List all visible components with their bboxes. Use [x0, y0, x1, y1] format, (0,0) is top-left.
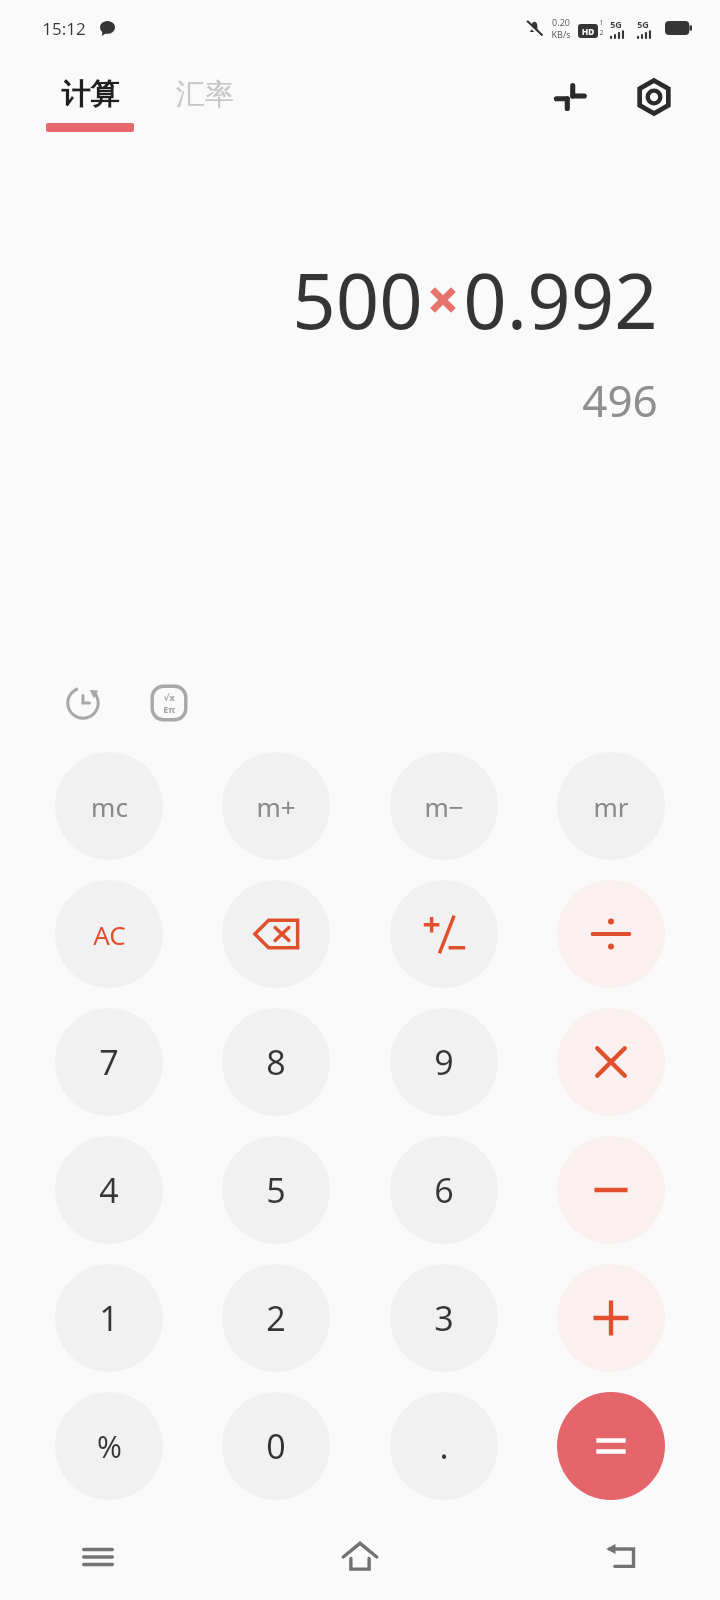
button[interactable]: 3	[390, 1264, 498, 1372]
button[interactable]: 6	[390, 1136, 498, 1244]
button[interactable]: 5	[222, 1136, 330, 1244]
staticText: 1	[99, 1295, 119, 1341]
staticText: 计算	[61, 76, 119, 113]
button[interactable]: 8	[222, 1008, 330, 1116]
staticText: 5	[266, 1167, 286, 1213]
button[interactable]: Scientific mode	[142, 676, 196, 730]
staticText: 1	[599, 18, 604, 28]
staticText: mc	[91, 789, 128, 824]
button[interactable]: Collapse	[544, 71, 596, 123]
staticText: 500	[292, 248, 423, 352]
staticText: 8	[266, 1039, 286, 1085]
button[interactable]: Recents	[52, 1514, 144, 1600]
staticText: KB/s	[551, 28, 571, 40]
staticText: √x	[163, 691, 175, 703]
button[interactable]: m+	[222, 752, 330, 860]
staticText: AC	[93, 917, 126, 952]
staticText: 5G	[637, 18, 649, 30]
button[interactable]: 2	[222, 1264, 330, 1372]
staticText: 5G	[610, 18, 622, 30]
button[interactable]: Back	[576, 1514, 668, 1600]
staticText: m−	[424, 789, 464, 824]
button[interactable]: 汇率	[176, 76, 234, 132]
button[interactable]: .	[390, 1392, 498, 1500]
button[interactable]: mr	[557, 752, 665, 860]
button[interactable]: 4	[55, 1136, 163, 1244]
button[interactable]: Minus	[557, 1136, 665, 1244]
staticText: 0.20	[552, 16, 570, 28]
staticText: 9	[434, 1039, 454, 1085]
button[interactable]: Backspace	[222, 880, 330, 988]
button[interactable]: Multiply	[557, 1008, 665, 1116]
staticText: 15:12	[42, 17, 86, 40]
staticText: 7	[99, 1039, 119, 1085]
button[interactable]: 1	[55, 1264, 163, 1372]
button[interactable]: Equals	[557, 1392, 665, 1500]
staticText: 2	[266, 1295, 286, 1341]
staticText: 6	[434, 1167, 454, 1213]
button[interactable]: 7	[55, 1008, 163, 1116]
button[interactable]: 9	[390, 1008, 498, 1116]
button[interactable]: 计算	[46, 76, 134, 132]
button[interactable]: 0	[222, 1392, 330, 1500]
button[interactable]: Home	[314, 1514, 406, 1600]
staticText: 0	[266, 1423, 286, 1469]
staticText: m+	[256, 789, 296, 824]
button[interactable]: Settings	[628, 71, 680, 123]
staticText: HD	[582, 26, 594, 37]
staticText: .	[439, 1423, 449, 1469]
staticText: 4	[99, 1167, 119, 1213]
staticText: 汇率	[176, 76, 234, 113]
button[interactable]: Plus minus	[390, 880, 498, 988]
staticText: %	[97, 1426, 122, 1467]
button[interactable]: History	[56, 676, 110, 730]
staticText: 0.992	[463, 248, 658, 352]
button[interactable]: Plus	[557, 1264, 665, 1372]
staticText: Eπ	[163, 703, 175, 715]
staticText: 3	[434, 1295, 454, 1341]
button[interactable]: Divide	[557, 880, 665, 988]
button[interactable]: %	[55, 1392, 163, 1500]
button[interactable]: AC	[55, 880, 163, 988]
staticText: 496	[582, 370, 658, 430]
button[interactable]: mc	[55, 752, 163, 860]
staticText: mr	[593, 789, 629, 824]
button[interactable]: m−	[390, 752, 498, 860]
staticText: 2	[599, 28, 604, 38]
